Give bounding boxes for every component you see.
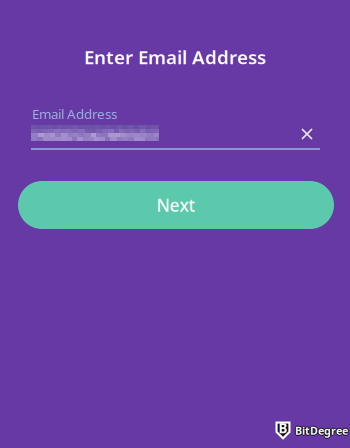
staticText: BitDegree	[295, 422, 348, 437]
staticText: Enter Email Address	[84, 45, 266, 69]
staticText: Email Address	[32, 105, 117, 123]
staticText: BitDegree	[295, 424, 348, 439]
button[interactable]: Clear text	[293, 120, 321, 148]
staticText: Next	[156, 193, 195, 216]
staticText: B	[278, 419, 287, 437]
button[interactable]: Next	[18, 181, 334, 229]
staticText: BitDegree	[295, 423, 348, 438]
staticText: BitDegree	[294, 423, 347, 438]
staticText: BitDegree	[296, 423, 349, 438]
